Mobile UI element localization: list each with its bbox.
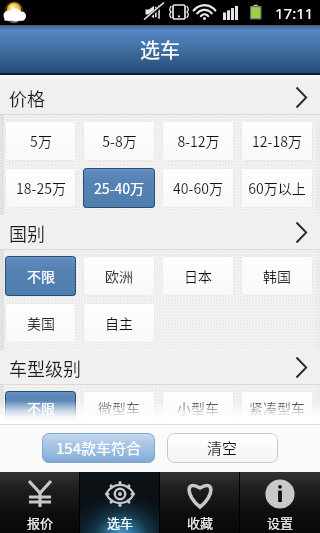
button[interactable]: 自主	[83, 303, 155, 343]
button[interactable]: 小型车	[162, 391, 234, 424]
staticText: 美国	[27, 313, 55, 333]
staticText: 自主	[105, 313, 133, 333]
staticText: 紧凑型车	[249, 398, 305, 418]
staticText: 国别	[9, 220, 45, 246]
staticText: 154款车符合	[56, 437, 141, 459]
button[interactable]: 清空	[167, 433, 278, 463]
button[interactable]: 154款车符合	[42, 433, 155, 463]
staticText: 25-40万	[94, 178, 144, 198]
staticText: 报价	[27, 513, 54, 532]
staticText: 微型车	[98, 398, 140, 418]
button[interactable]: 5-8万	[83, 121, 155, 161]
button[interactable]: 微型车	[83, 391, 155, 424]
button[interactable]: 18-25万	[5, 168, 76, 208]
button[interactable]: 设置	[240, 472, 320, 533]
staticText: 设置	[267, 513, 294, 532]
staticText: 收藏	[187, 513, 214, 532]
staticText: 选车	[140, 35, 180, 64]
button[interactable]: 8-12万	[162, 121, 234, 161]
staticText: 韩国	[263, 266, 291, 286]
staticText: 小型车	[177, 398, 219, 418]
staticText: 价格	[9, 85, 45, 111]
button[interactable]: 车型级别	[0, 350, 320, 385]
staticText: 不限	[27, 266, 55, 286]
staticText: 5-8万	[102, 131, 137, 151]
button[interactable]: 收藏	[160, 472, 240, 533]
button[interactable]: 不限	[5, 391, 76, 424]
button[interactable]: 美国	[5, 303, 76, 343]
staticText: 60万以上	[248, 178, 306, 198]
staticText: 5万	[30, 131, 52, 151]
button[interactable]: 不限	[5, 256, 76, 296]
staticText: 清空	[207, 437, 238, 459]
button[interactable]: 日本	[162, 256, 234, 296]
staticText: 不限	[27, 398, 55, 418]
button[interactable]: 40-60万	[162, 168, 234, 208]
button[interactable]: 25-40万	[83, 168, 155, 208]
button[interactable]: 价格	[0, 80, 320, 115]
staticText: 选车	[107, 513, 134, 532]
button[interactable]: 12-18万	[241, 121, 313, 161]
button[interactable]: 紧凑型车	[241, 391, 313, 424]
button[interactable]: 欧洲	[83, 256, 155, 296]
staticText: 18-25万	[16, 178, 66, 198]
staticText: 17:11	[275, 3, 314, 23]
staticText: 40-60万	[173, 178, 223, 198]
staticText: 12-18万	[252, 131, 302, 151]
button[interactable]: 5万	[5, 121, 76, 161]
button[interactable]: 选车	[80, 472, 160, 533]
staticText: 8-12万	[177, 131, 220, 151]
staticText: 日本	[184, 266, 212, 286]
button[interactable]: 60万以上	[241, 168, 313, 208]
button[interactable]: 报价	[0, 472, 80, 533]
button[interactable]: 韩国	[241, 256, 313, 296]
button[interactable]: 国别	[0, 215, 320, 250]
staticText: 车型级别	[9, 355, 81, 381]
staticText: 欧洲	[105, 266, 133, 286]
